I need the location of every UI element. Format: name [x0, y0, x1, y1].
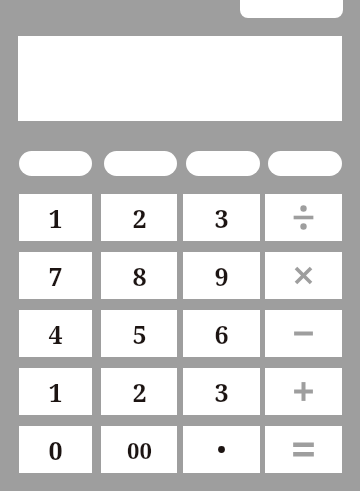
button[interactable]: 7	[19, 252, 92, 299]
button[interactable]: Add	[265, 368, 342, 415]
button[interactable]: Decimal point	[183, 426, 260, 473]
button[interactable]: 6	[183, 310, 260, 357]
staticText: 1	[48, 375, 63, 409]
button[interactable]: Backspace	[104, 151, 177, 176]
button[interactable]: 2	[101, 368, 177, 415]
staticText: 7	[48, 259, 63, 293]
button[interactable]: 5	[101, 310, 177, 357]
staticText: 0	[48, 433, 63, 467]
button[interactable]: Divide	[265, 194, 342, 241]
staticText: 2	[132, 375, 147, 409]
button[interactable]: 1	[19, 194, 92, 241]
button[interactable]: Menu tab	[240, 0, 343, 18]
staticText: 00	[127, 435, 152, 465]
button[interactable]: 2	[101, 194, 177, 241]
staticText: 8	[132, 259, 147, 293]
staticText: 6	[214, 317, 229, 351]
staticText: 2	[132, 201, 147, 235]
staticText: 9	[214, 259, 229, 293]
button[interactable]: Equals	[265, 426, 342, 473]
button[interactable]: 1	[19, 368, 92, 415]
button[interactable]: 9	[183, 252, 260, 299]
staticText: 5	[132, 317, 147, 351]
button[interactable]: Percent	[186, 151, 260, 176]
button[interactable]: 00	[101, 426, 177, 473]
button[interactable]: Memory	[268, 151, 342, 176]
button[interactable]: 4	[19, 310, 92, 357]
button[interactable]: Multiply	[265, 252, 342, 299]
button[interactable]: 0	[19, 426, 92, 473]
staticText: 4	[48, 317, 63, 351]
button[interactable]: Clear	[19, 151, 92, 176]
staticText: 1	[48, 201, 63, 235]
staticText: 3	[214, 201, 229, 235]
button[interactable]: 8	[101, 252, 177, 299]
button[interactable]: 3	[183, 194, 260, 241]
staticText: 3	[214, 375, 229, 409]
button[interactable]: 3	[183, 368, 260, 415]
button[interactable]: Subtract	[265, 310, 342, 357]
